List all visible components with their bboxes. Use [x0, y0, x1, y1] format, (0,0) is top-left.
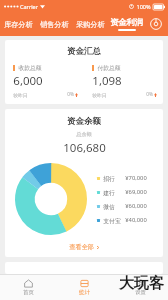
staticText: 资金汇总: [67, 46, 101, 57]
staticText: 100%: [136, 3, 151, 10]
staticText: 支付宝: [103, 217, 121, 224]
staticText: 销售分析: [40, 20, 69, 29]
staticText: 付款总额: [97, 64, 121, 71]
button[interactable]: 资金利润: [108, 12, 144, 36]
staticText: 统计: [79, 289, 90, 296]
staticText: 106,680: [63, 140, 106, 156]
button[interactable]: 首页: [0, 274, 56, 300]
staticText: 库存分析: [4, 20, 33, 29]
staticText: 1,098: [92, 73, 122, 89]
staticText: ¥60,000: [125, 202, 147, 210]
staticText: 0%: [67, 91, 74, 98]
staticText: 建行: [103, 189, 115, 196]
button[interactable]: 统计: [56, 274, 112, 300]
staticText: 查看全部: [69, 243, 94, 251]
staticText: Carrier: [20, 3, 38, 10]
staticText: 微信: [103, 203, 115, 210]
staticText: 总余额: [76, 131, 92, 138]
staticText: 0%: [146, 91, 153, 98]
staticText: ¥70,000: [125, 174, 147, 182]
button[interactable]: 销售分析: [36, 12, 72, 36]
staticText: 6,000: [13, 73, 43, 89]
staticText: 大玩客: [119, 274, 164, 293]
staticText: 采购分析: [76, 20, 105, 29]
button[interactable]: 查看全部: [63, 241, 106, 253]
staticText: ¥69,000: [125, 188, 147, 196]
button[interactable]: Settings: [144, 12, 168, 36]
staticText: 资金利润: [110, 17, 143, 27]
staticText: 较昨日: [92, 92, 107, 98]
button[interactable]: 设置: [112, 274, 168, 300]
staticText: 招行: [103, 175, 115, 182]
staticText: 首页: [23, 289, 34, 296]
staticText: ¥40,000: [125, 216, 147, 224]
button[interactable]: 库存分析: [0, 12, 36, 36]
staticText: 资金余额: [67, 116, 101, 127]
staticText: 设置: [135, 289, 146, 296]
staticText: 收款总额: [18, 64, 42, 71]
button[interactable]: 采购分析: [72, 12, 108, 36]
staticText: 较昨日: [13, 92, 28, 98]
